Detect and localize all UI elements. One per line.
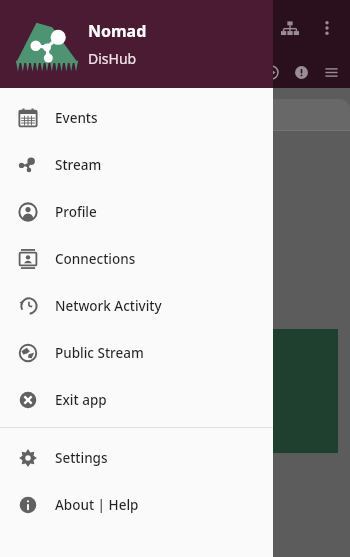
staticText: Exit app: [55, 391, 107, 409]
button[interactable]: About | Help: [0, 481, 273, 528]
button[interactable]: Network Activity: [0, 282, 273, 329]
button[interactable]: More options: [310, 11, 344, 45]
staticText: AD: [136, 356, 208, 427]
staticText: About | Help: [55, 496, 139, 514]
button[interactable]: Stream: [0, 141, 273, 188]
button[interactable]: Public Stream: [0, 329, 273, 376]
button[interactable]: [12, 99, 350, 130]
staticText: Network Activity: [55, 297, 162, 315]
staticText: Public Stream: [55, 344, 144, 362]
button[interactable]: Alerts: [286, 57, 316, 87]
button[interactable]: Open navigation menu: [316, 57, 346, 87]
staticText: Nomad: [88, 20, 147, 42]
button[interactable]: Nomad: [0, 0, 273, 88]
button[interactable]: Connections: [0, 235, 273, 282]
staticText: Events: [55, 109, 98, 127]
button[interactable]: Hierarchy: [270, 8, 310, 48]
button[interactable]: Events: [0, 94, 273, 141]
staticText: Connections: [55, 250, 136, 268]
staticText: Settings: [55, 449, 108, 467]
button[interactable]: Settings: [0, 434, 273, 481]
button[interactable]: Login: [256, 57, 286, 87]
staticText: Stream: [55, 156, 102, 174]
staticText: Profile: [55, 203, 97, 221]
button[interactable]: Exit app: [0, 376, 273, 423]
staticText: DisHub: [88, 49, 137, 68]
button[interactable]: Profile: [0, 188, 273, 235]
